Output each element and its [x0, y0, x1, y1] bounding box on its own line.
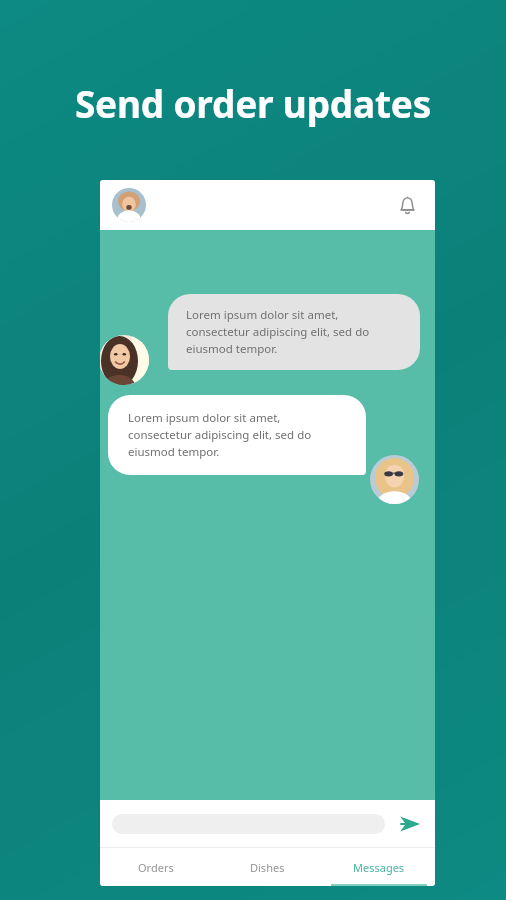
staticText: Messages: [353, 860, 405, 875]
button[interactable]: Messages: [323, 848, 435, 886]
button[interactable]: Lorem ipsum dolor sit amet, consectetur …: [168, 294, 420, 370]
button[interactable]: Notifications: [391, 189, 423, 221]
staticText: Lorem ipsum dolor sit amet, consectetur …: [128, 410, 346, 460]
staticText: Orders: [138, 860, 174, 875]
staticText: Lorem ipsum dolor sit amet, consectetur …: [186, 307, 402, 357]
button[interactable]: Lorem ipsum dolor sit amet, consectetur …: [108, 395, 366, 475]
button[interactable]: Profile: [112, 188, 146, 222]
button[interactable]: Dishes: [211, 848, 323, 886]
button[interactable]: Send: [395, 809, 425, 839]
staticText: Dishes: [250, 860, 285, 875]
button[interactable]: Contact avatar: [100, 335, 149, 385]
button[interactable]: Your avatar: [370, 455, 419, 504]
button[interactable]: Orders: [100, 848, 211, 886]
staticText: Send order updates: [30, 78, 476, 128]
